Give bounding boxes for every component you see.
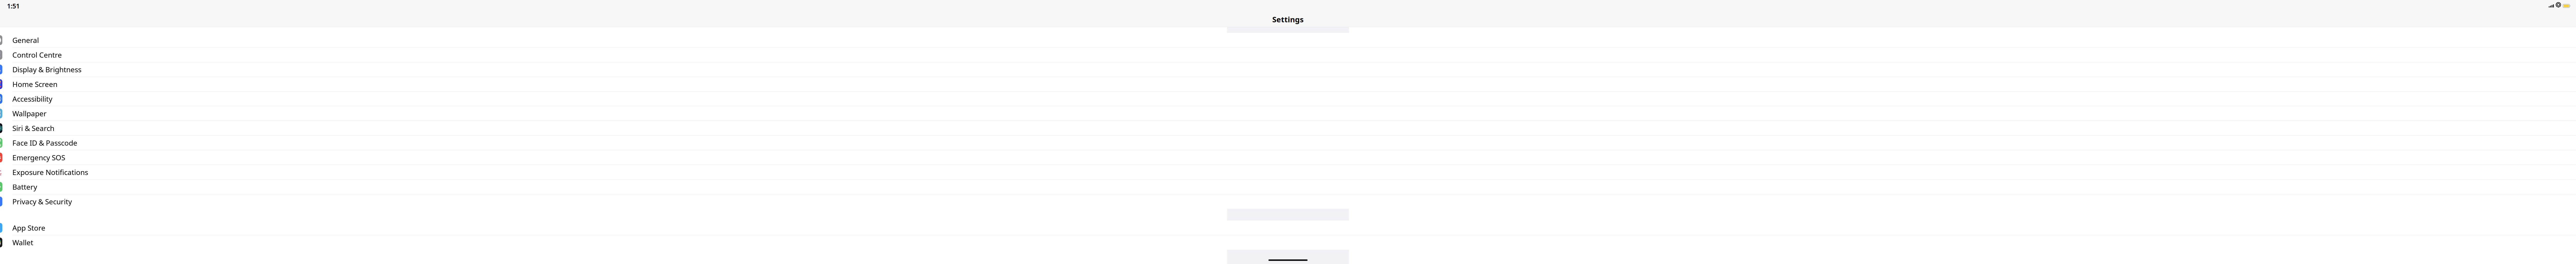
staticText: Control Centre	[12, 50, 62, 60]
staticText: Wallet	[12, 238, 33, 247]
staticText: Emergency SOS	[12, 153, 65, 162]
button[interactable]: AA	[0, 62, 2576, 77]
staticText: Battery	[12, 182, 37, 192]
button[interactable]: Face ID & Passcode	[0, 136, 2576, 150]
button[interactable]: General	[0, 33, 2576, 48]
staticText: Home Screen	[12, 79, 57, 89]
button[interactable]: Wallet	[0, 235, 2576, 250]
staticText: Siri & Search	[12, 123, 54, 133]
staticText: App Store	[12, 223, 45, 233]
button[interactable]: Battery	[0, 180, 2576, 194]
button[interactable]: Privacy & Security	[0, 194, 2576, 209]
staticText: Exposure Notifications	[12, 167, 88, 177]
staticText: SOS	[0, 155, 1, 160]
staticText: General	[12, 35, 39, 45]
button[interactable]: Siri & Search	[0, 121, 2576, 136]
button[interactable]: Wallpaper	[0, 106, 2576, 121]
staticText: AA	[0, 66, 1, 73]
staticText: Display & Brightness	[12, 65, 81, 74]
staticText: Accessibility	[12, 94, 52, 104]
staticText: Privacy & Security	[12, 197, 72, 206]
button[interactable]: SOS	[0, 150, 2576, 165]
button[interactable]: Exposure Notifications	[0, 165, 2576, 180]
button[interactable]: Accessibility	[0, 92, 2576, 106]
button[interactable]: App Store	[0, 221, 2576, 235]
button[interactable]: Control Centre	[0, 48, 2576, 62]
staticText: Face ID & Passcode	[12, 138, 77, 148]
staticText: Settings	[1272, 14, 1304, 24]
staticText: 1:51	[7, 2, 20, 10]
staticText: Wallpaper	[12, 109, 47, 118]
button[interactable]: Home Screen	[0, 77, 2576, 92]
